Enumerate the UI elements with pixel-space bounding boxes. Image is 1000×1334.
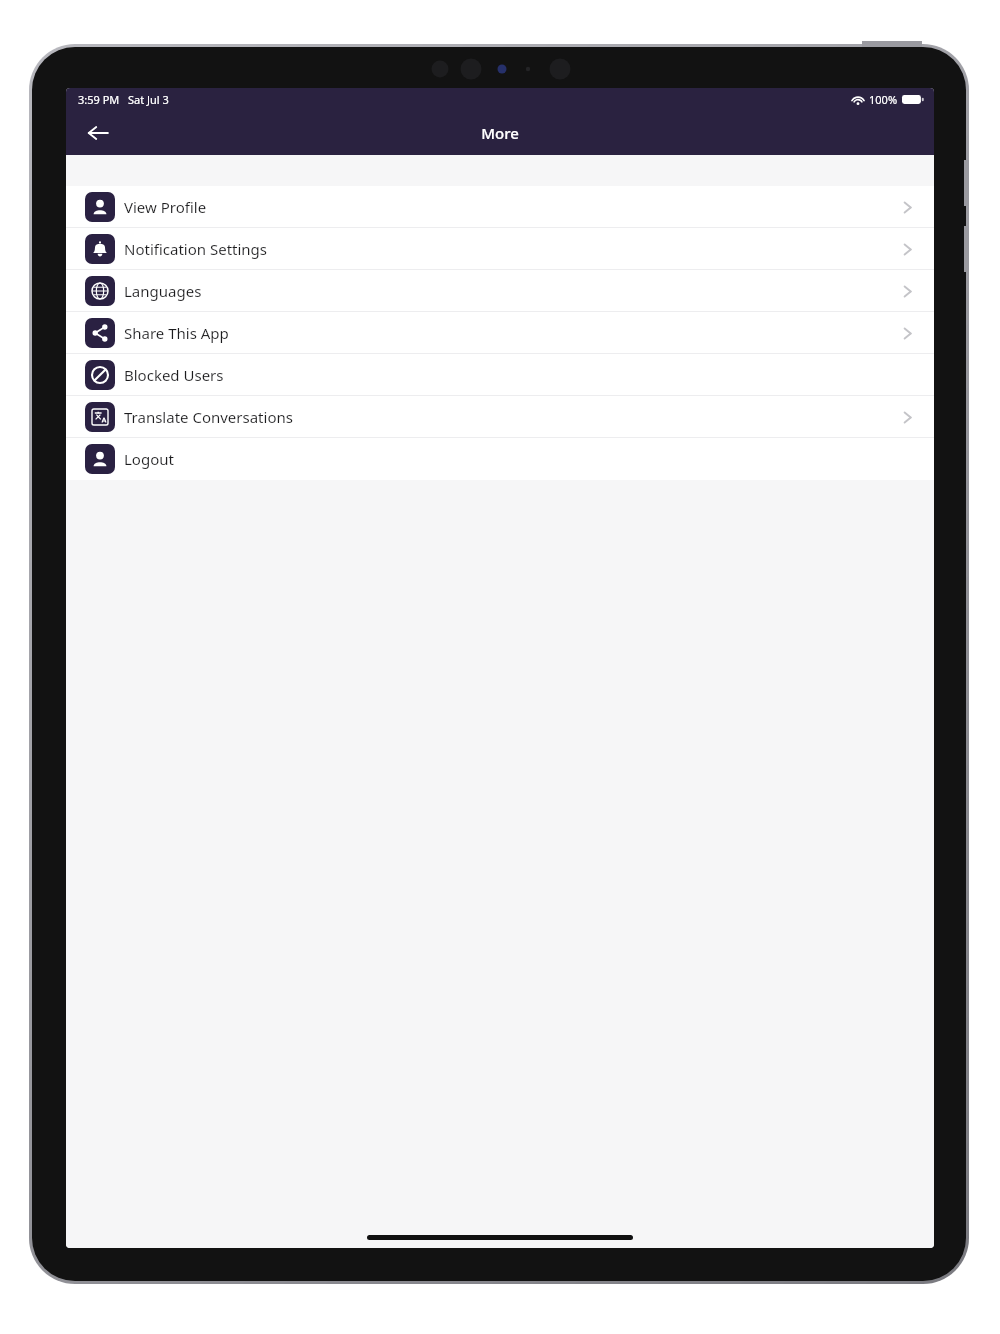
staticText: Languages [124,281,202,301]
staticText: Notification Settings [124,239,268,259]
staticText: View Profile [124,197,207,217]
staticText: Sat Jul 3 [128,92,169,107]
button[interactable]: Translate Conversations [66,396,934,438]
staticText: More [481,123,519,143]
button[interactable]: View Profile [66,186,934,228]
staticText: Blocked Users [124,365,224,385]
button[interactable]: Share This App [66,312,934,354]
staticText: 3:59 PM [78,92,120,107]
button[interactable]: Notification Settings [66,228,934,270]
staticText: Logout [124,449,174,469]
button[interactable]: Back [76,111,120,155]
staticText: Share This App [124,323,229,343]
staticText: Translate Conversations [124,407,293,427]
button[interactable]: Logout [66,438,934,480]
button[interactable]: Blocked Users [66,354,934,396]
staticText: 100% [869,92,898,107]
button[interactable]: Languages [66,270,934,312]
